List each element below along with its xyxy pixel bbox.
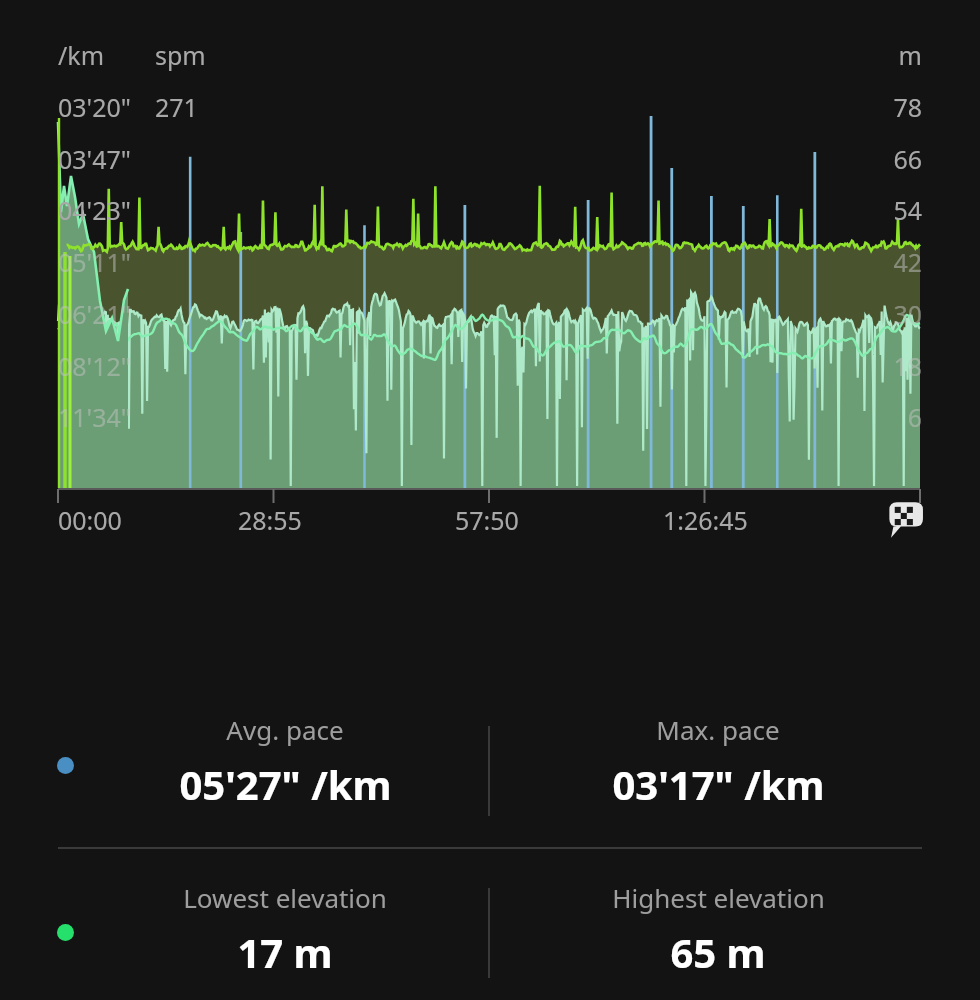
staticText: Highest elevation — [612, 880, 825, 915]
staticText: 54 — [842, 193, 922, 227]
staticText: m — [842, 38, 922, 72]
staticText: 06'21" — [58, 297, 132, 331]
staticText: Max. pace — [656, 712, 780, 747]
staticText: 65 m — [670, 925, 766, 979]
staticText: 05'27" /km — [179, 757, 392, 811]
staticText: 57:50 — [455, 503, 519, 537]
staticText: 03'47" — [58, 142, 132, 176]
staticText: spm — [155, 38, 206, 72]
staticText: 271 — [155, 90, 198, 124]
staticText: 18 — [842, 349, 922, 383]
staticText: 04'23" — [58, 193, 132, 227]
staticText: 28:55 — [238, 503, 302, 537]
staticText: 00:00 — [58, 503, 122, 537]
button[interactable]: Pace, cadence and elevation chart — [0, 0, 980, 1000]
staticText: Avg. pace — [226, 712, 344, 747]
staticText: 30 — [842, 297, 922, 331]
staticText: 78 — [842, 90, 922, 124]
staticText: /km — [58, 38, 105, 72]
staticText: 03'20" — [58, 90, 132, 124]
staticText: 1:26:45 — [663, 503, 748, 537]
staticText: 66 — [842, 142, 922, 176]
button[interactable]: Highest elevation — [518, 880, 918, 979]
button[interactable]: Max. pace — [518, 712, 918, 811]
staticText: 17 m — [237, 925, 333, 979]
staticText: Lowest elevation — [183, 880, 387, 915]
staticText: 11'34" — [58, 400, 132, 434]
staticText: 6 — [842, 400, 922, 434]
staticText: 03'17" /km — [612, 757, 825, 811]
staticText: 05'11" — [58, 245, 132, 279]
button[interactable]: Avg. pace — [85, 712, 485, 811]
staticText: 08'12" — [58, 349, 132, 383]
staticText: 42 — [842, 245, 922, 279]
button[interactable]: Finish — [886, 498, 928, 540]
button[interactable]: Lowest elevation — [85, 880, 485, 979]
